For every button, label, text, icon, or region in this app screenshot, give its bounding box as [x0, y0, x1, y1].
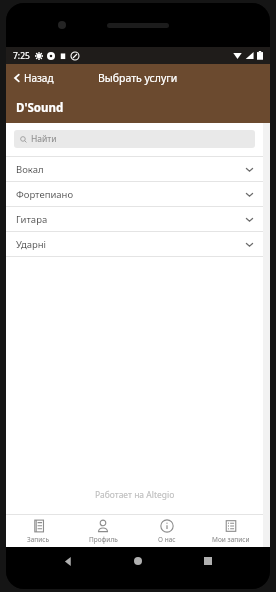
button[interactable]: Мои записи: [199, 515, 263, 547]
staticText: О нас: [158, 535, 176, 544]
button[interactable]: Назад: [6, 64, 62, 92]
button[interactable]: Профиль: [71, 515, 135, 547]
other: О нас: [160, 519, 174, 533]
staticText: Выбрать услуги: [98, 71, 178, 85]
staticText: Ударні: [16, 238, 47, 251]
staticText: Работает на Altegio: [95, 489, 175, 501]
other: Запись: [32, 519, 46, 533]
button[interactable]: Back: [60, 553, 76, 569]
staticText: Фортепиано: [16, 188, 74, 201]
staticText: Найти: [31, 133, 57, 145]
staticText: Мои записи: [212, 535, 250, 544]
button[interactable]: О нас: [135, 515, 199, 547]
button[interactable]: Recents: [200, 553, 216, 569]
button[interactable]: Home: [130, 553, 146, 569]
button[interactable]: Фортепиано: [6, 182, 263, 207]
button[interactable]: Ударні: [6, 232, 263, 257]
staticText: Гитара: [16, 213, 48, 226]
other: Мои записи: [224, 519, 238, 533]
button[interactable]: Запись: [6, 515, 71, 547]
staticText: D'Sound: [16, 100, 64, 116]
staticText: Запись: [27, 535, 50, 544]
button[interactable]: Найти: [14, 130, 255, 148]
staticText: Вокал: [16, 163, 44, 176]
staticText: Назад: [24, 71, 54, 85]
staticText: Профиль: [89, 535, 118, 544]
button[interactable]: Вокал: [6, 157, 263, 182]
button[interactable]: Гитара: [6, 207, 263, 232]
other: Профиль: [96, 519, 110, 533]
staticText: 7:25: [13, 50, 30, 62]
